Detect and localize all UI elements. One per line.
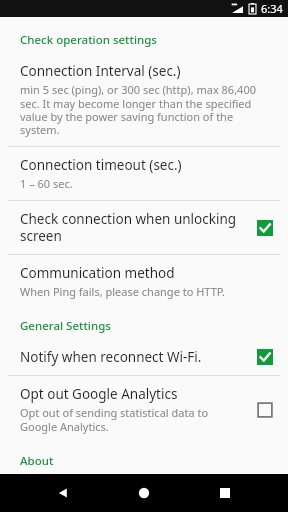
staticText: Opt out of sending statistical data to G… — [20, 405, 248, 434]
staticText: Opt out Google Analytics — [20, 385, 178, 403]
button[interactable]: Home — [129, 478, 159, 508]
staticText: 6:34 — [261, 1, 283, 16]
button[interactable]: Check connection when unlocking screen — [0, 201, 288, 254]
button[interactable]: Back — [48, 478, 78, 508]
button[interactable]: Notify when reconnect Wi-Fi. — [0, 339, 288, 375]
button[interactable]: Connection timeout (sec.) — [0, 147, 288, 200]
button[interactable]: Checked — [256, 348, 274, 366]
staticText: When Ping fails, please change to HTTP. — [20, 284, 225, 299]
staticText: Connection timeout (sec.) — [20, 156, 182, 174]
staticText: Check connection when unlocking screen — [20, 210, 248, 245]
button[interactable]: Connection Interval (sec.) — [0, 53, 288, 146]
button[interactable]: Unchecked — [256, 401, 274, 419]
staticText: About — [20, 453, 54, 469]
staticText: min 5 sec (ping), or 300 sec (http), max… — [20, 82, 274, 137]
staticText: Check operation settings — [20, 32, 157, 48]
button[interactable]: Communication method — [0, 255, 288, 308]
button[interactable]: Recent apps — [210, 478, 240, 508]
staticText: 1 – 60 sec. — [20, 176, 73, 191]
staticText: Communication method — [20, 264, 175, 282]
staticText: Notify when reconnect Wi-Fi. — [20, 348, 202, 366]
button[interactable]: Checked — [256, 219, 274, 237]
staticText: General Settings — [20, 318, 111, 334]
staticText: Connection Interval (sec.) — [20, 62, 181, 80]
button[interactable]: Opt out Google Analytics — [0, 376, 288, 443]
